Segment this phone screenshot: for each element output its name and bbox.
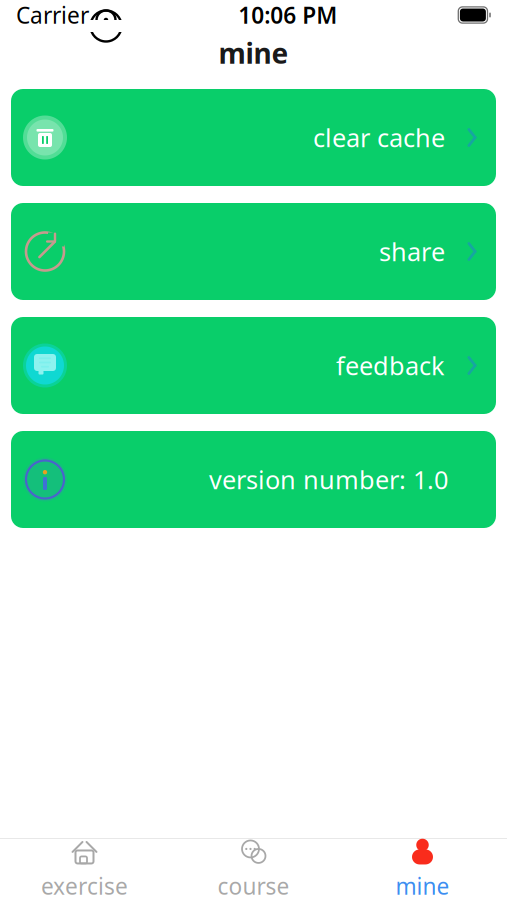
staticText: feedback [336, 349, 445, 382]
button[interactable]: feedback [11, 317, 496, 414]
button[interactable]: clear cache [11, 89, 496, 186]
staticText: clear cache [313, 121, 445, 154]
staticText: exercise [41, 871, 128, 900]
button[interactable]: exercise [0, 839, 169, 900]
staticText: 10:06 PM [238, 0, 337, 30]
button[interactable]: course [169, 839, 338, 900]
button[interactable]: share [11, 203, 496, 300]
staticText: Carrier [16, 0, 89, 30]
staticText: version number: 1.0 [209, 463, 448, 496]
button[interactable]: mine [338, 839, 507, 900]
staticText: mine [218, 34, 288, 72]
staticText: mine [395, 871, 449, 900]
button[interactable]: version number: 1.0 [11, 431, 496, 528]
staticText: course [217, 871, 289, 900]
staticText: share [379, 235, 445, 268]
